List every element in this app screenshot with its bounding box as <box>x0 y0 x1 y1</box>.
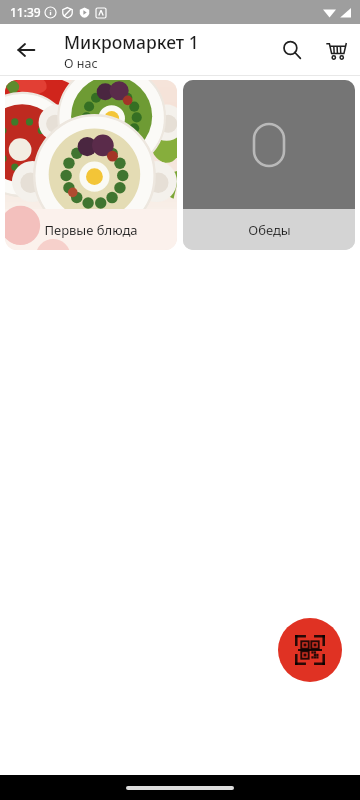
staticText: 11:39 <box>10 4 41 20</box>
button[interactable]: Back <box>4 28 48 72</box>
button[interactable]: Search <box>270 28 314 72</box>
staticText: Первые блюда <box>44 221 138 239</box>
staticText: Микромаркет 1 <box>64 30 199 54</box>
button[interactable]: Первые блюда <box>5 80 177 250</box>
button[interactable]: Scan QR code <box>278 618 342 682</box>
button[interactable]: Cart <box>314 28 358 72</box>
button[interactable]: Обеды <box>183 80 355 250</box>
staticText: Обеды <box>248 221 291 239</box>
staticText: О нас <box>64 55 98 72</box>
